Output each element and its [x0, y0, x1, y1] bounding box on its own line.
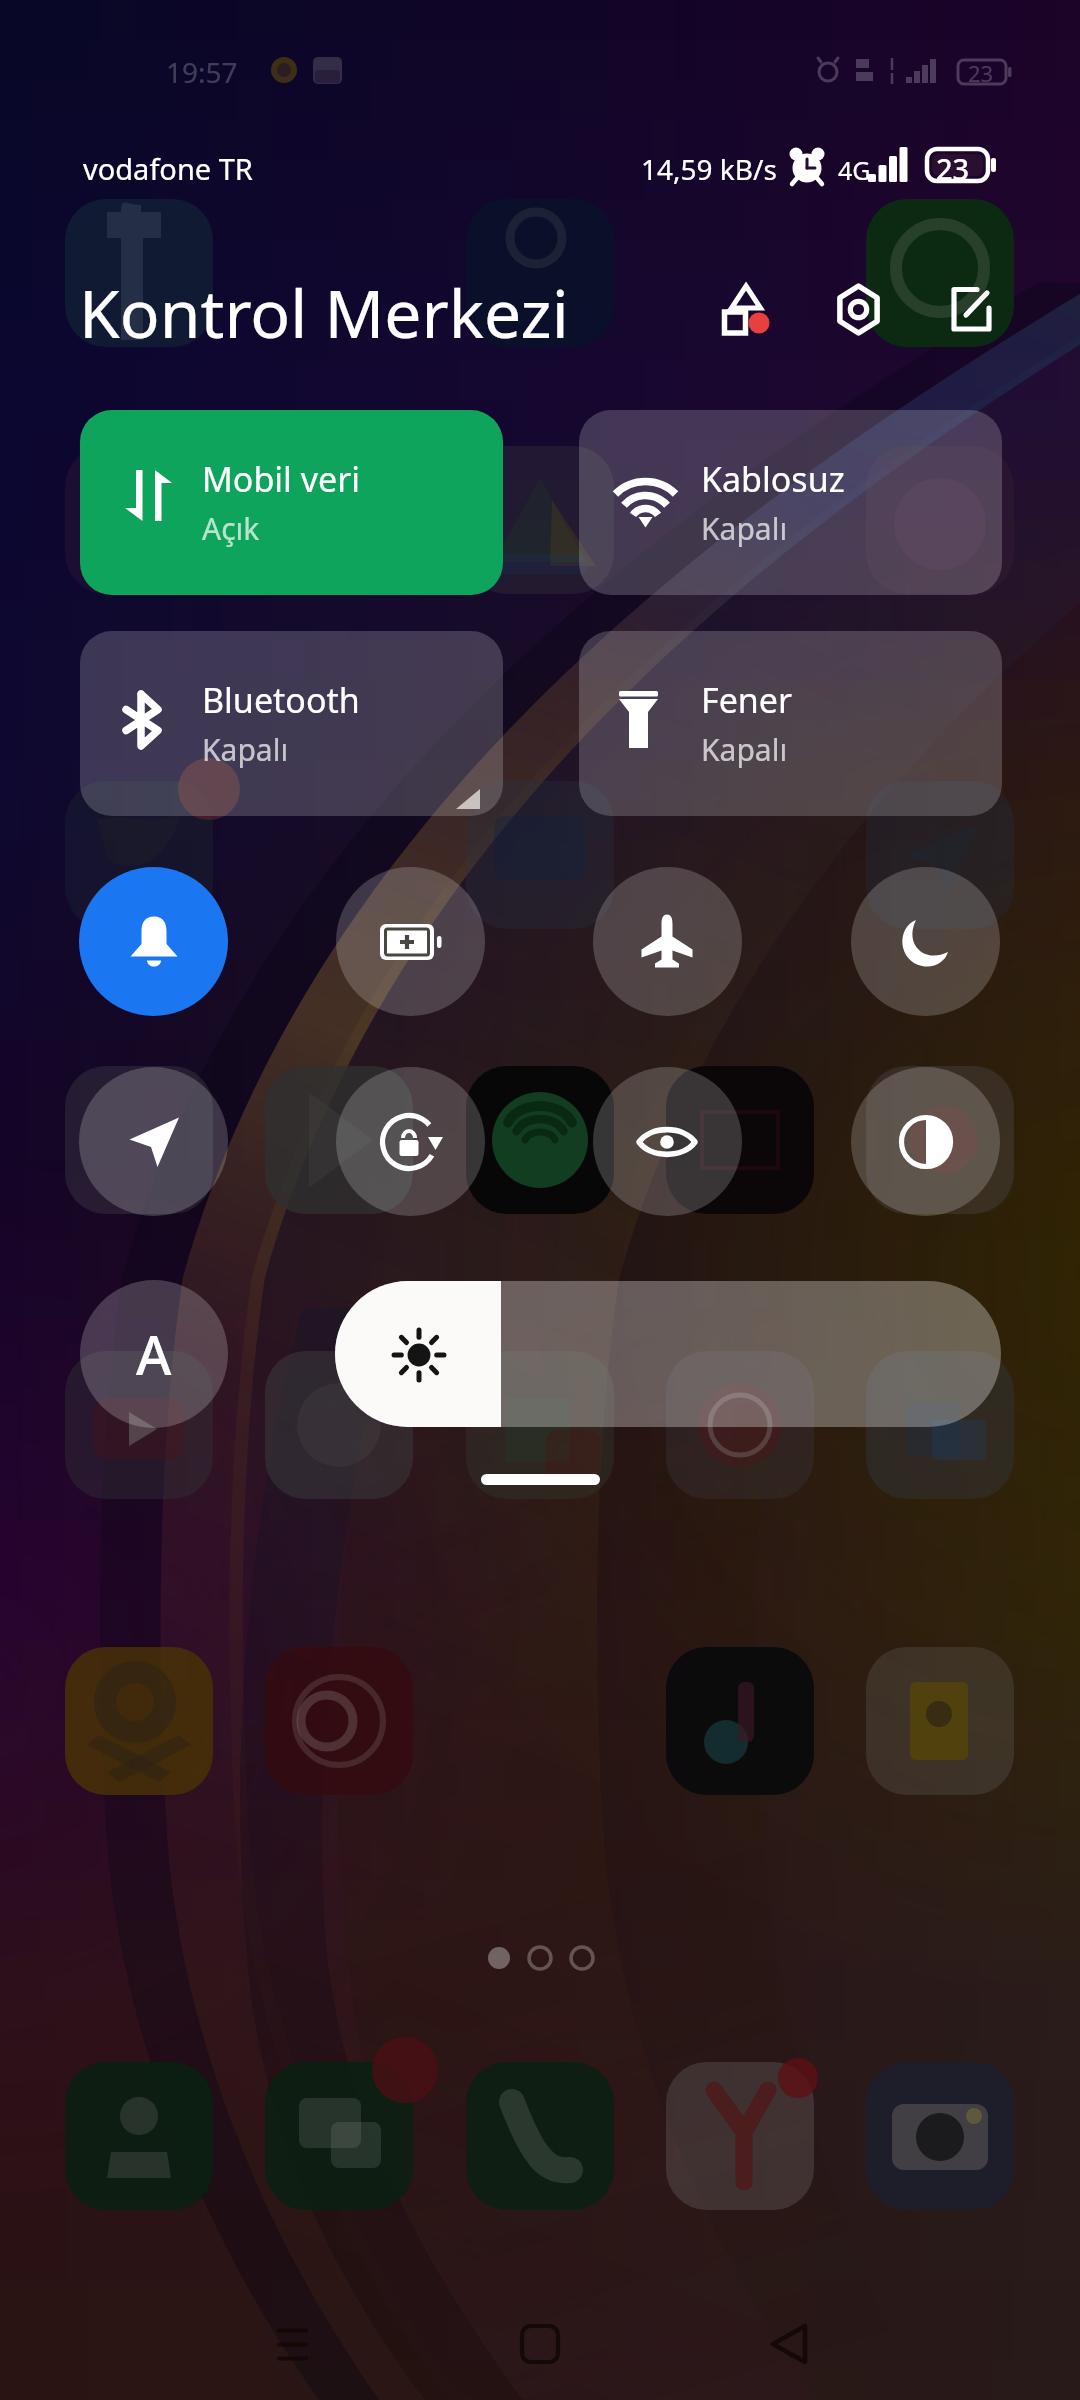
staticText: 23 — [968, 58, 994, 88]
button[interactable]: Settings — [830, 281, 888, 339]
staticText: Mobil veri — [202, 456, 360, 502]
button[interactable]: Bluetooth — [80, 631, 503, 816]
staticText: Kapalı — [701, 729, 788, 770]
staticText: 19:57 — [166, 53, 238, 91]
button[interactable]: Sound — [79, 867, 228, 1016]
staticText: 14,59 kB/s — [641, 150, 777, 188]
button[interactable]: Auto rotate — [336, 1067, 485, 1216]
button[interactable]: Kablosuz — [579, 410, 1002, 595]
staticText: Açık — [202, 508, 260, 549]
staticText: Kapalı — [701, 508, 788, 549]
staticText: vodafone TR — [83, 149, 253, 188]
button[interactable]: Airplane mode — [593, 867, 742, 1016]
button[interactable]: Do not disturb — [851, 867, 1000, 1016]
button[interactable]: Brightness — [335, 1281, 1001, 1427]
button[interactable]: Edit shortcuts — [716, 277, 780, 341]
button[interactable]: Fener — [579, 631, 1002, 816]
button[interactable]: Recents — [255, 2310, 331, 2380]
button[interactable]: Edit — [944, 283, 1000, 339]
staticText: A — [136, 1317, 172, 1391]
button[interactable]: Location — [79, 1067, 228, 1216]
staticText: 4G — [838, 153, 871, 187]
button[interactable]: Auto brightness — [80, 1280, 228, 1428]
staticText: Kablosuz — [701, 456, 845, 502]
staticText: Bluetooth — [202, 677, 360, 723]
button[interactable]: Mobil veri — [80, 410, 503, 595]
button[interactable]: Home — [505, 2310, 575, 2380]
button[interactable]: Back — [755, 2310, 825, 2380]
staticText: Fener — [701, 677, 793, 723]
button[interactable]: Battery saver — [336, 867, 485, 1016]
staticText: Kapalı — [202, 729, 289, 770]
staticText: Kontrol Merkezi — [79, 267, 569, 357]
button[interactable]: Dark mode — [851, 1067, 1000, 1216]
staticText: 23 — [936, 149, 970, 188]
button[interactable]: Eye comfort — [593, 1067, 742, 1216]
